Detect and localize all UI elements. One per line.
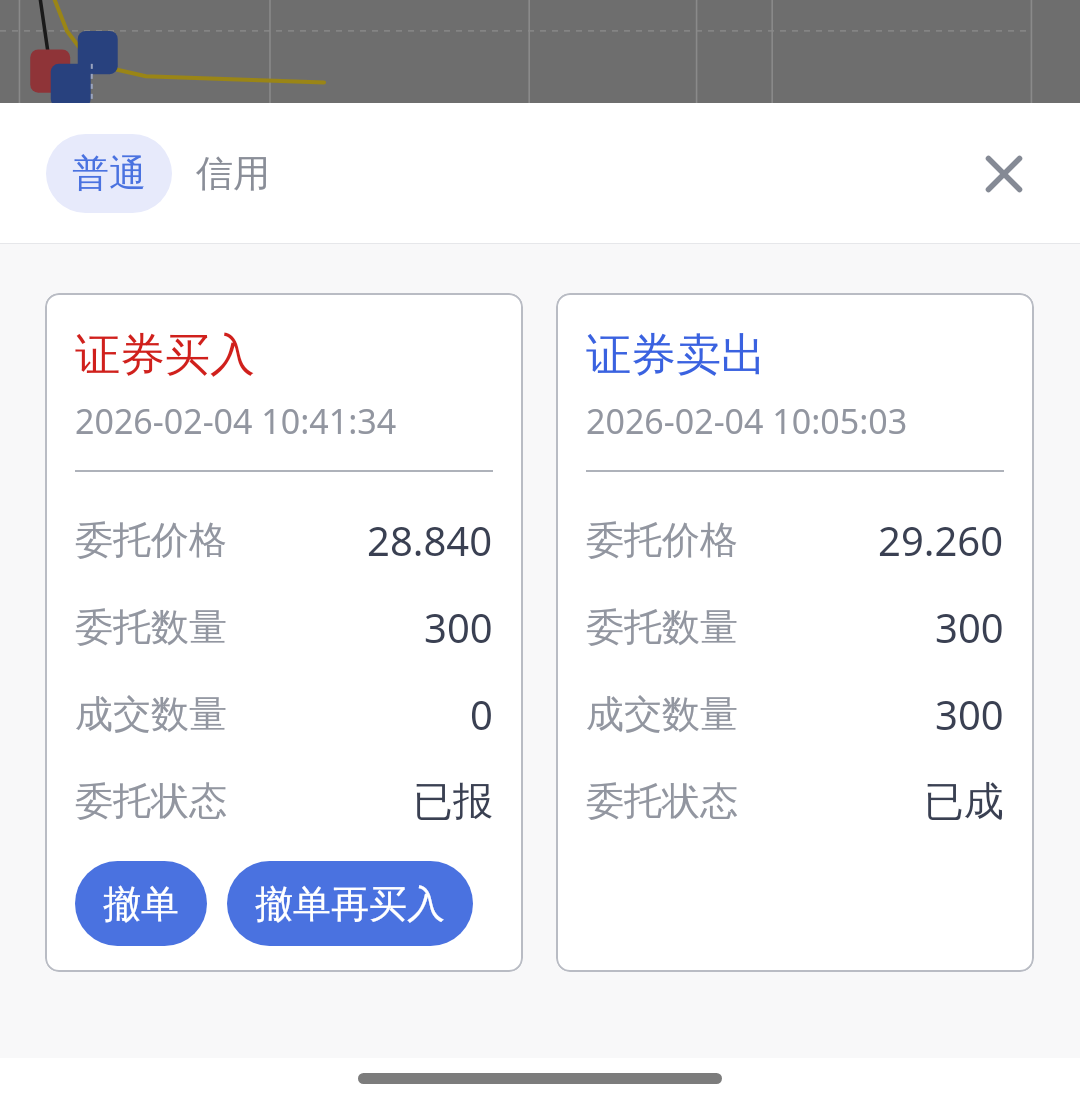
staticText: 委托价格	[75, 516, 227, 564]
staticText: 委托数量	[586, 603, 738, 651]
staticText: 证券卖出	[586, 327, 766, 384]
staticText: 300	[935, 687, 1004, 741]
button[interactable]: 普通	[46, 134, 172, 213]
staticText: 已成	[924, 776, 1004, 826]
staticText: 信用	[196, 150, 270, 197]
staticText: 成交数量	[586, 690, 738, 738]
staticText: 2026-02-04 10:05:03	[586, 398, 908, 444]
staticText: 普通	[72, 150, 146, 197]
staticText: 委托状态	[586, 777, 738, 825]
button[interactable]: 撤单	[75, 861, 207, 946]
staticText: 证券买入	[75, 327, 255, 384]
staticText: 300	[424, 600, 493, 654]
staticText: 已报	[413, 776, 493, 826]
staticText: 委托价格	[586, 516, 738, 564]
staticText: 委托状态	[75, 777, 227, 825]
staticText: 0	[470, 687, 493, 741]
button[interactable]: 证券卖出	[556, 293, 1034, 972]
staticText: 300	[935, 600, 1004, 654]
staticText: 29.260	[878, 513, 1004, 567]
staticText: 2026-02-04 10:41:34	[75, 398, 397, 444]
staticText: 撤单	[103, 880, 179, 928]
button[interactable]: 证券买入	[45, 293, 523, 972]
button[interactable]: Close	[968, 138, 1040, 210]
staticText: 成交数量	[75, 690, 227, 738]
staticText: 撤单再买入	[255, 880, 445, 928]
staticText: 28.840	[367, 513, 493, 567]
button[interactable]: 撤单再买入	[227, 861, 473, 946]
button[interactable]: 信用	[172, 134, 294, 213]
staticText: 委托数量	[75, 603, 227, 651]
